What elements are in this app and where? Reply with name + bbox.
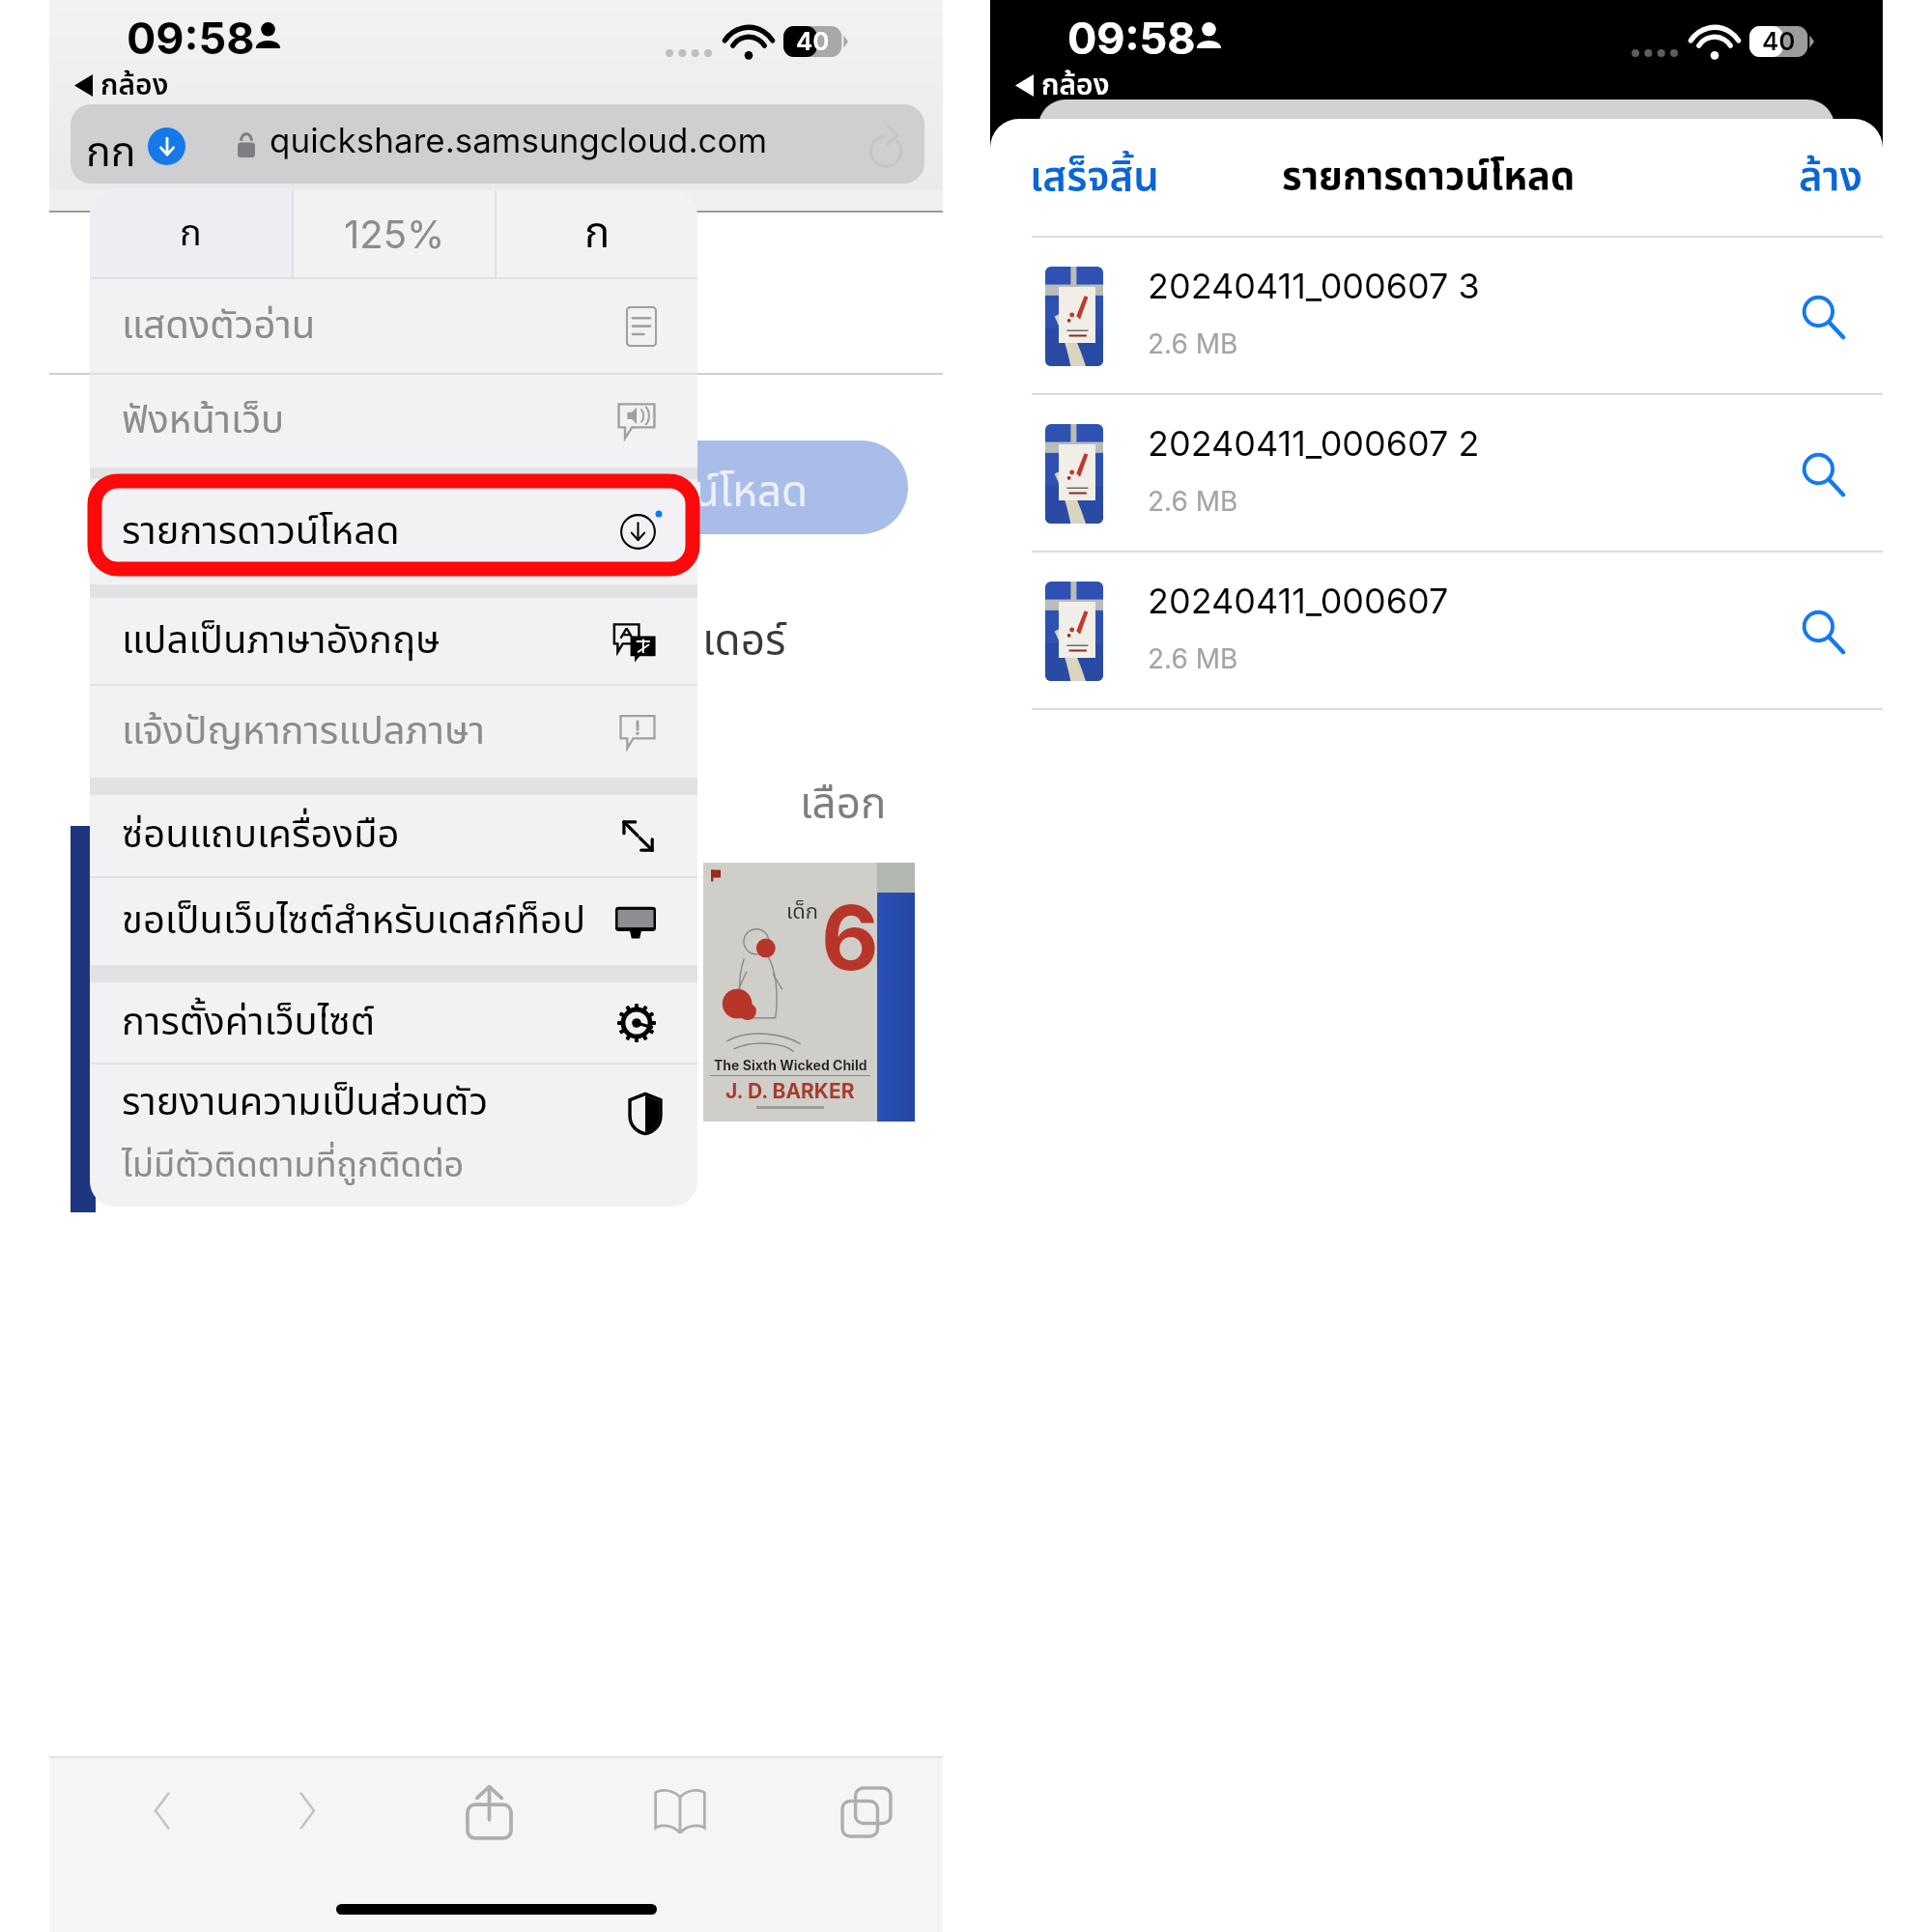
staticText: ก: [584, 202, 611, 266]
staticText: 2.6 MB: [1148, 485, 1238, 518]
button[interactable]: 125%: [294, 190, 495, 277]
staticText: 2.6 MB: [1148, 327, 1238, 360]
staticText: การตั้งค่าเว็บไซต์: [122, 994, 376, 1052]
staticText: ขอเป็นเว็บไซต์สำหรับเดสก์ท็อป: [122, 893, 586, 951]
staticText: ซ่อนแถบเครื่องมือ: [122, 807, 400, 865]
button[interactable]: ก: [497, 190, 697, 277]
staticText: เลือก: [800, 773, 887, 837]
staticText: 125%: [344, 211, 445, 257]
button[interactable]: Share: [466, 1785, 513, 1839]
staticText: 09:58: [1067, 12, 1196, 64]
staticText: quickshare.samsungcloud.com: [270, 120, 768, 160]
staticText: 09:58: [127, 12, 255, 64]
staticText: รายงานความเป็นส่วนตัว: [122, 1074, 489, 1132]
staticText: รายการดาวน์โหลด: [1282, 149, 1576, 207]
staticText: แสดงตัวอ่าน: [122, 298, 316, 355]
button[interactable]: Reload: [869, 126, 902, 167]
button[interactable]: Downloads: [148, 128, 185, 165]
staticText: ล้าง: [1799, 147, 1862, 208]
staticText: 2.6 MB: [1148, 642, 1238, 675]
staticText: เด็ก: [786, 896, 819, 928]
button[interactable]: เสร็จสิ้น: [1030, 147, 1159, 208]
staticText: ไม่มีตัวติดตามที่ถูกติดต่อ: [122, 1140, 465, 1192]
button[interactable]: Show in Finder: [1801, 295, 1845, 339]
staticText: เสร็จสิ้น: [1030, 147, 1159, 208]
staticText: The Sixth Wicked Child: [714, 1057, 867, 1073]
button[interactable]: 20240411_000607: [990, 553, 1883, 710]
staticText: ฟังหน้าเว็บ: [122, 392, 285, 450]
button[interactable]: Show in Finder: [1801, 610, 1845, 654]
button[interactable]: ขอเป็นเว็บไซต์สำหรับเดสก์ท็อป: [90, 878, 697, 965]
staticText: 40: [1762, 26, 1796, 56]
staticText: 20240411_000607: [1148, 580, 1449, 622]
button[interactable]: Show in Finder: [1801, 452, 1845, 497]
button[interactable]: กล้อง: [1015, 64, 1110, 107]
button[interactable]: การตั้งค่าเว็บไซต์: [90, 982, 697, 1063]
staticText: รายการดาวน์โหลด: [122, 503, 400, 561]
staticText: กล้อง: [100, 64, 169, 107]
button[interactable]: 20240411_000607 3: [990, 238, 1883, 395]
staticText: ดาวน์โหลด: [629, 461, 809, 525]
staticText: แจ้งปัญหาการแปลภาษา: [122, 703, 485, 761]
button[interactable]: กล้อง: [74, 64, 169, 107]
button[interactable]: 20240411_000607 2: [990, 395, 1883, 553]
button[interactable]: Tabs: [841, 1787, 892, 1837]
button[interactable]: รายการดาวน์โหลด: [90, 479, 697, 584]
staticText: J. D. BARKER: [725, 1079, 855, 1103]
button[interactable]: Back: [147, 1789, 178, 1833]
staticText: กล้อง: [1041, 64, 1110, 107]
button[interactable]: แปลเป็นภาษาอังกฤษ: [90, 598, 697, 684]
button[interactable]: [71, 104, 924, 184]
button[interactable]: แจ้งปัญหาการแปลภาษา: [90, 686, 697, 778]
button[interactable]: รายงานความเป็นส่วนตัว: [90, 1065, 697, 1207]
staticText: 40: [796, 26, 830, 56]
button[interactable]: ฟังหน้าเว็บ: [90, 375, 697, 468]
button[interactable]: ก: [90, 190, 292, 277]
button[interactable]: แสดงตัวอ่าน: [90, 279, 697, 373]
button[interactable]: ซ่อนแถบเครื่องมือ: [90, 795, 697, 876]
staticText: 20240411_000607 2: [1148, 422, 1480, 465]
staticText: เดอร์: [702, 610, 786, 673]
button[interactable]: Bookmarks: [654, 1788, 706, 1834]
staticText: แปลเป็นภาษาอังกฤษ: [122, 612, 440, 670]
staticText: ก: [180, 207, 202, 262]
staticText: กก: [86, 122, 136, 185]
staticText: 20240411_000607 3: [1148, 265, 1480, 307]
button[interactable]: Forward: [292, 1789, 323, 1833]
staticText: 6: [821, 884, 879, 991]
button[interactable]: ล้าง: [1799, 147, 1862, 208]
